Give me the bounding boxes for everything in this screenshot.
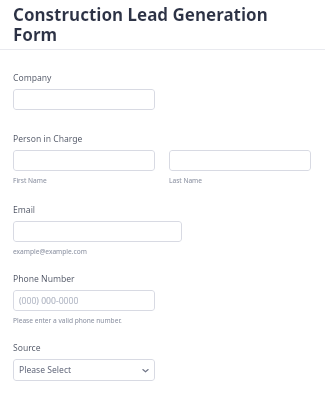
staticText: Last Name (169, 176, 203, 185)
staticText: Email (13, 204, 36, 216)
button[interactable] (13, 221, 182, 242)
button[interactable]: Please Select (13, 359, 155, 381)
staticText: Phone Number (13, 273, 75, 285)
other: Open dropdown (142, 367, 149, 374)
staticText: First Name (13, 176, 47, 185)
staticText: Please enter a valid phone number. (13, 316, 122, 325)
button[interactable] (13, 89, 155, 110)
staticText: (000) 000-0000 (19, 295, 79, 307)
staticText: Source (13, 342, 41, 354)
button[interactable] (169, 150, 311, 171)
button[interactable] (13, 150, 155, 171)
staticText: example@example.com (13, 247, 87, 256)
staticText: Please Select (19, 364, 72, 376)
staticText: Company (13, 72, 52, 84)
staticText: Person in Charge (13, 133, 83, 145)
button[interactable]: (000) 000-0000 (13, 290, 155, 311)
staticText: Construction Lead Generation Form (13, 3, 315, 46)
